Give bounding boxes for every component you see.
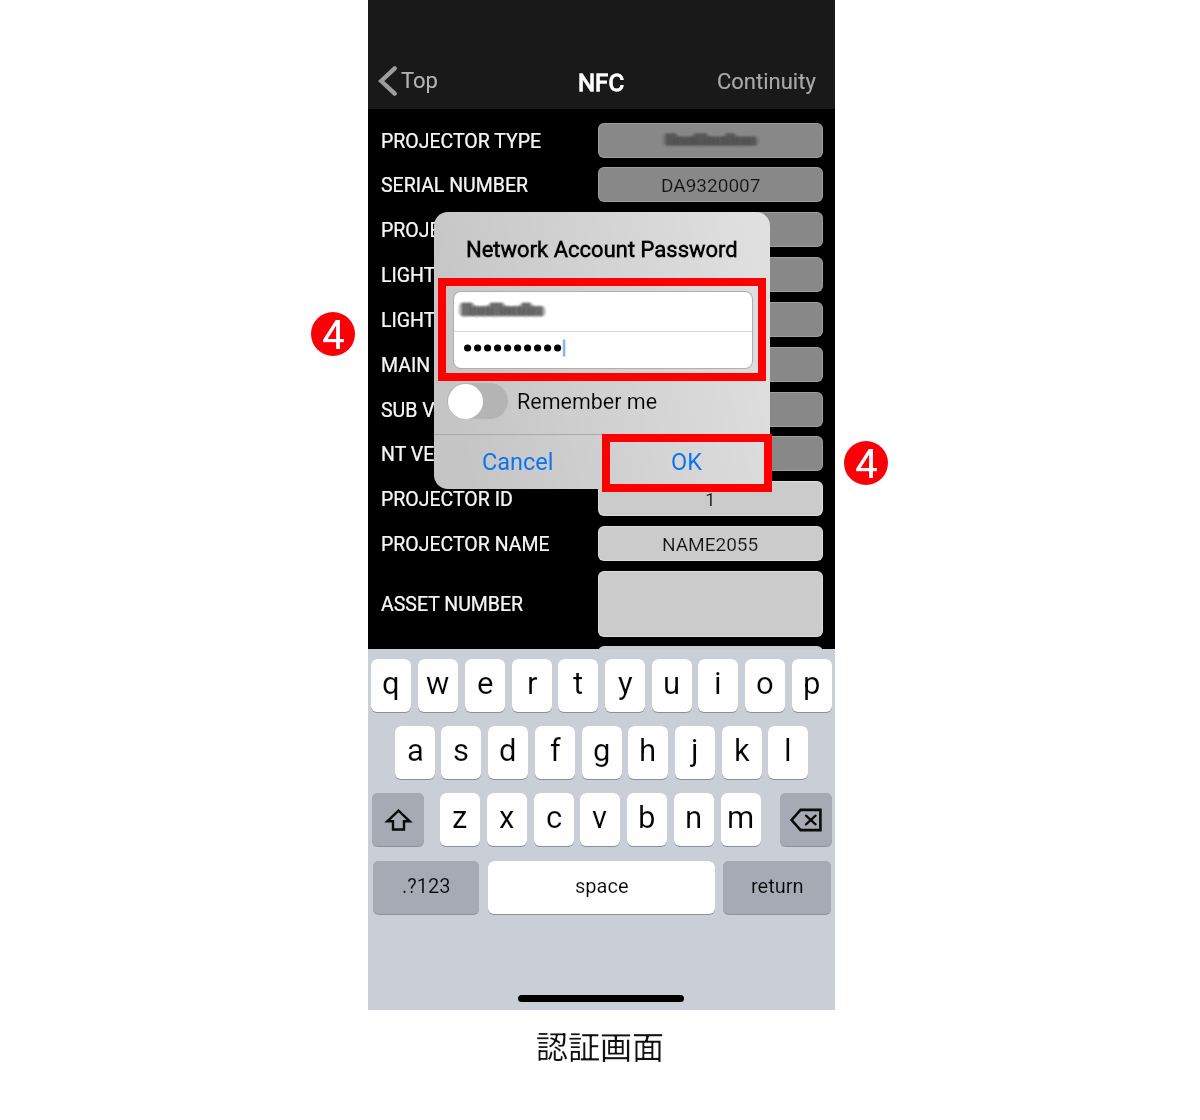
staticText: z bbox=[452, 799, 468, 835]
button[interactable] bbox=[599, 393, 822, 426]
button[interactable] bbox=[599, 348, 822, 381]
button[interactable]: r bbox=[512, 659, 552, 712]
staticText: Remember me bbox=[517, 389, 658, 414]
staticText: NFC bbox=[578, 69, 625, 97]
staticText: y bbox=[618, 665, 633, 701]
button[interactable]: OK bbox=[602, 435, 770, 489]
staticText: v bbox=[592, 799, 608, 835]
button[interactable]: w bbox=[418, 659, 458, 712]
staticText: d bbox=[499, 732, 517, 768]
button[interactable]: s bbox=[441, 726, 481, 779]
staticText: x bbox=[499, 799, 515, 835]
staticText: PROJECTOR NAME bbox=[381, 533, 550, 556]
button[interactable]: Remember me bbox=[447, 383, 658, 419]
staticText: PROJECTOR TYPE bbox=[381, 130, 542, 153]
staticText: o bbox=[756, 665, 774, 701]
button[interactable]: c bbox=[534, 793, 574, 846]
button[interactable]: return bbox=[723, 861, 831, 914]
staticText: b bbox=[638, 799, 656, 835]
staticText: .?123 bbox=[402, 874, 451, 897]
button[interactable]: e bbox=[465, 659, 505, 712]
button[interactable]: Shift bbox=[372, 793, 424, 846]
staticText: g bbox=[593, 732, 611, 768]
button[interactable]: u bbox=[652, 659, 692, 712]
staticText: NAME2055 bbox=[662, 533, 759, 555]
button[interactable]: b bbox=[627, 793, 667, 846]
button[interactable]: Cancel bbox=[434, 435, 602, 489]
button[interactable]: Continuity bbox=[714, 62, 819, 102]
staticText: u bbox=[663, 665, 681, 701]
button[interactable]: l bbox=[768, 726, 808, 779]
staticText: w bbox=[426, 665, 450, 701]
button[interactable]: h bbox=[628, 726, 668, 779]
button[interactable]: Step 4 bbox=[844, 441, 888, 485]
staticText: c bbox=[546, 799, 563, 835]
staticText: NT VERSION bbox=[381, 443, 491, 466]
button[interactable]: d bbox=[488, 726, 528, 779]
button[interactable] bbox=[599, 213, 822, 246]
staticText: l bbox=[784, 732, 792, 768]
staticText: LIGHT OUTPUT bbox=[381, 264, 515, 287]
button[interactable] bbox=[599, 437, 822, 470]
button[interactable]: a bbox=[395, 726, 435, 779]
staticText: Cancel bbox=[482, 448, 554, 476]
staticText: 4 bbox=[855, 441, 878, 485]
staticText: t bbox=[573, 665, 584, 701]
button[interactable]: q bbox=[371, 659, 411, 712]
button[interactable]: x bbox=[487, 793, 527, 846]
button[interactable] bbox=[599, 124, 822, 157]
staticText: 4 bbox=[322, 312, 345, 356]
staticText: e bbox=[477, 665, 494, 701]
button[interactable]: f bbox=[535, 726, 575, 779]
button[interactable]: n bbox=[674, 793, 714, 846]
button[interactable]: 1 bbox=[599, 482, 822, 515]
staticText: i bbox=[714, 665, 722, 701]
staticText: r bbox=[527, 665, 538, 701]
staticText: s bbox=[453, 732, 469, 768]
button[interactable] bbox=[599, 303, 822, 336]
button[interactable]: Backspace bbox=[780, 793, 832, 846]
staticText: Continuity bbox=[717, 69, 816, 95]
staticText: ASSET NUMBER bbox=[381, 593, 524, 616]
staticText: Top bbox=[401, 68, 438, 94]
staticText: return bbox=[751, 874, 804, 897]
staticText: 1 bbox=[705, 488, 716, 510]
staticText: MAIN VERSION bbox=[381, 354, 515, 377]
staticText: n bbox=[685, 799, 703, 835]
button[interactable]: DA9320007 bbox=[599, 168, 822, 201]
button[interactable]: y bbox=[605, 659, 645, 712]
button[interactable]: p bbox=[792, 659, 832, 712]
staticText: k bbox=[734, 732, 750, 768]
staticText: p bbox=[803, 665, 821, 701]
staticText: DA9320007 bbox=[661, 174, 761, 196]
button[interactable]: .?123 bbox=[373, 861, 479, 914]
button[interactable]: Step 4 bbox=[311, 312, 355, 356]
button[interactable] bbox=[599, 572, 822, 636]
staticText: a bbox=[407, 732, 424, 768]
button[interactable]: z bbox=[440, 793, 480, 846]
button[interactable]: v bbox=[580, 793, 620, 846]
staticText: PROJECTOR ID bbox=[381, 488, 513, 511]
button[interactable]: NAME2055 bbox=[599, 527, 822, 560]
button[interactable]: j bbox=[675, 726, 715, 779]
staticText: 認証画面 bbox=[536, 1022, 665, 1068]
staticText: space bbox=[575, 874, 629, 897]
button[interactable] bbox=[599, 258, 822, 291]
button[interactable]: m bbox=[721, 793, 761, 846]
staticText: SERIAL NUMBER bbox=[381, 174, 529, 197]
staticText: SUB VERSION bbox=[381, 399, 502, 422]
button[interactable]: g bbox=[582, 726, 622, 779]
staticText: LIGHT RUNTIME bbox=[381, 309, 524, 332]
button[interactable]: space bbox=[488, 861, 715, 914]
button[interactable]: i bbox=[698, 659, 738, 712]
staticText: f bbox=[550, 732, 561, 768]
staticText: q bbox=[382, 665, 400, 701]
button[interactable]: o bbox=[745, 659, 785, 712]
button[interactable]: Back to Top bbox=[374, 59, 442, 103]
staticText: Network Account Password bbox=[466, 237, 738, 263]
staticText: h bbox=[639, 732, 657, 768]
staticText: m bbox=[727, 799, 755, 835]
button[interactable]: t bbox=[558, 659, 598, 712]
staticText: j bbox=[691, 732, 699, 768]
button[interactable]: k bbox=[722, 726, 762, 779]
